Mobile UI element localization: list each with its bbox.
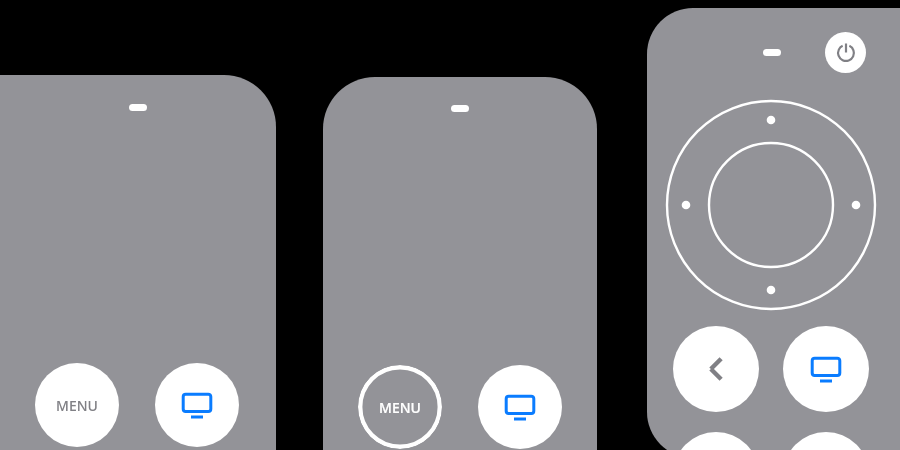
- button[interactable]: Remote 3: [647, 8, 900, 450]
- button[interactable]: MENU: [358, 365, 442, 449]
- button[interactable]: MENU: [35, 363, 119, 447]
- button[interactable]: Touch surface: [664, 98, 878, 312]
- staticText: MENU: [56, 396, 98, 415]
- button[interactable]: Play Pause: [783, 432, 869, 450]
- button[interactable]: Mute: [673, 432, 759, 450]
- button[interactable]: Remote 1: [0, 75, 276, 450]
- button[interactable]: TV: [783, 326, 869, 412]
- button[interactable]: Remote 2: [323, 77, 597, 450]
- button[interactable]: TV: [155, 363, 239, 447]
- button[interactable]: Power: [825, 32, 866, 73]
- button[interactable]: TV: [478, 365, 562, 449]
- button[interactable]: Back: [673, 326, 759, 412]
- staticText: MENU: [379, 398, 421, 417]
